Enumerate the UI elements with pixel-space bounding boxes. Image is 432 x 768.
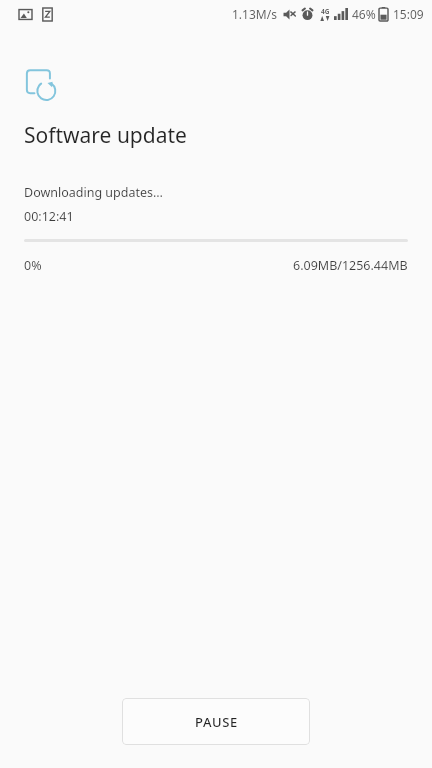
- button[interactable]: PAUSE: [122, 698, 310, 745]
- staticText: 00:12:41: [24, 208, 74, 225]
- staticText: 46%: [352, 6, 376, 22]
- staticText: 1.13M/s: [232, 6, 277, 22]
- staticText: 4G: [321, 7, 330, 16]
- staticText: 6.09MB/1256.44MB: [293, 257, 408, 274]
- staticText: PAUSE: [195, 713, 238, 731]
- staticText: 0%: [24, 257, 42, 274]
- staticText: 15:09: [393, 6, 424, 22]
- staticText: Software update: [24, 121, 187, 150]
- staticText: Downloading updates…: [24, 184, 163, 201]
